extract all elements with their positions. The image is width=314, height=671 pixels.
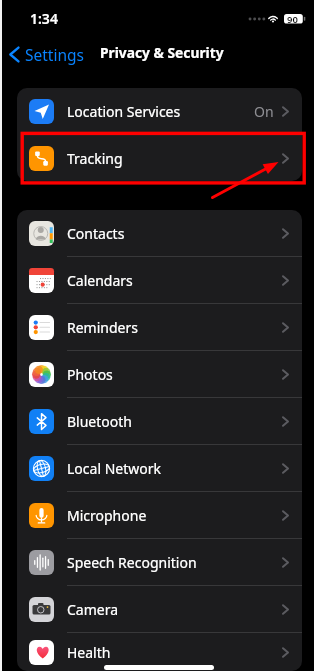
staticText: Contacts [67, 224, 125, 243]
staticText: Microphone [67, 506, 147, 525]
button[interactable]: Microphone [17, 492, 302, 538]
button[interactable]: Local Network [17, 445, 302, 491]
staticText: Privacy & Security [100, 43, 224, 62]
staticText: Local Network [67, 459, 161, 478]
staticText: Location Services [67, 102, 181, 121]
button[interactable]: Tracking [17, 135, 302, 181]
button[interactable]: Calendars [17, 257, 302, 303]
button[interactable]: Reminders [17, 304, 302, 350]
staticText: Bluetooth [67, 412, 132, 431]
staticText: Speech Recognition [67, 553, 197, 572]
button[interactable]: Contacts [17, 210, 302, 256]
staticText: Photos [67, 365, 113, 384]
button[interactable]: Camera [17, 586, 302, 632]
button[interactable]: Settings [6, 41, 87, 68]
staticText: Settings [25, 44, 84, 65]
button[interactable]: Photos [17, 351, 302, 397]
staticText: 1:34 [30, 9, 58, 28]
staticText: Health [67, 643, 111, 662]
staticText: On [254, 102, 274, 121]
staticText: Camera [67, 600, 119, 619]
staticText: 90 [287, 13, 298, 23]
staticText: Reminders [67, 318, 138, 337]
button[interactable]: Bluetooth [17, 398, 302, 444]
button[interactable]: Speech Recognition [17, 539, 302, 585]
button[interactable]: Location Services [17, 88, 302, 134]
staticText: Tracking [67, 149, 123, 168]
button[interactable]: Health [17, 633, 302, 671]
staticText: Calendars [67, 271, 133, 290]
